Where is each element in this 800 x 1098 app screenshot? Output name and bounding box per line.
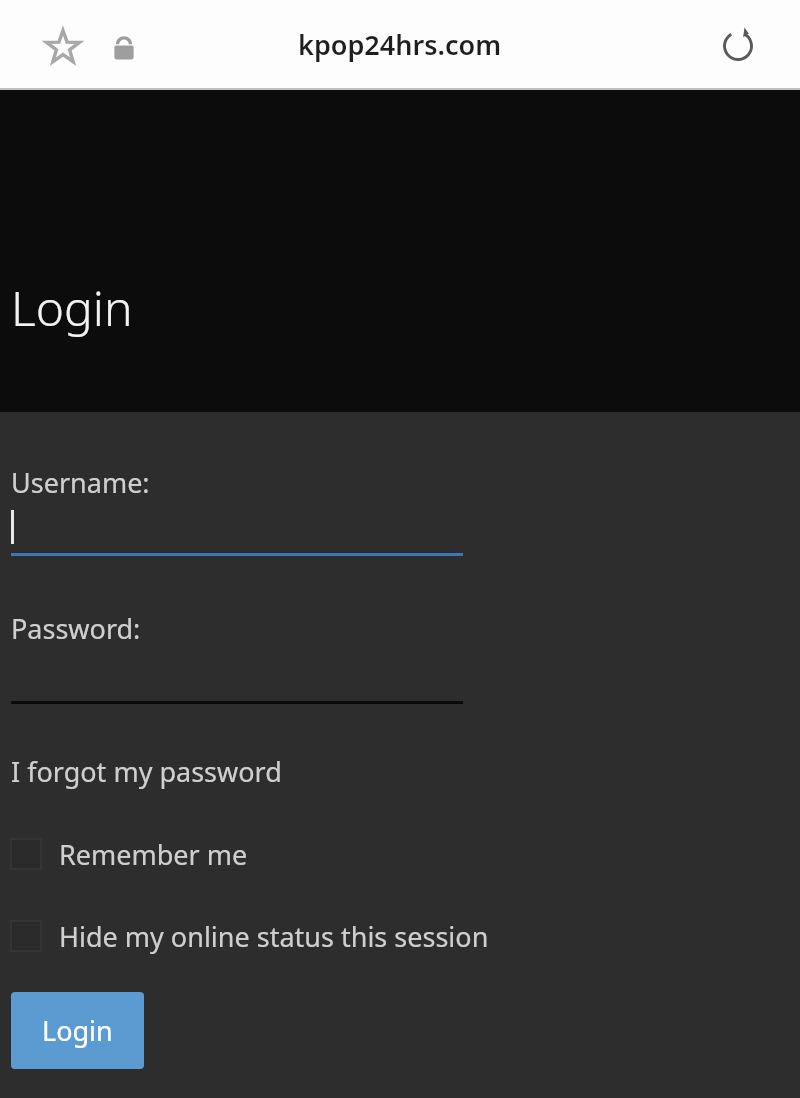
- button[interactable]: Login: [11, 992, 144, 1069]
- button[interactable]: I forgot my password: [11, 753, 282, 790]
- staticText: Password:: [11, 610, 141, 647]
- staticText: Login: [42, 1012, 113, 1049]
- staticText: Login: [11, 275, 133, 340]
- staticText: kpop24hrs.com: [298, 26, 502, 63]
- button[interactable]: Hide my online status this session: [11, 914, 489, 958]
- button[interactable]: Bookmark: [38, 22, 88, 72]
- button[interactable]: Remember me: [11, 832, 248, 876]
- staticText: Remember me: [59, 836, 248, 873]
- button[interactable]: Password field: [11, 652, 463, 704]
- staticText: Hide my online status this session: [59, 918, 489, 955]
- button[interactable]: Reload: [712, 20, 764, 72]
- button[interactable]: Username field: [11, 504, 463, 556]
- staticText: I forgot my password: [11, 753, 282, 790]
- staticText: Username:: [11, 464, 150, 501]
- button[interactable]: Site security info: [100, 24, 148, 72]
